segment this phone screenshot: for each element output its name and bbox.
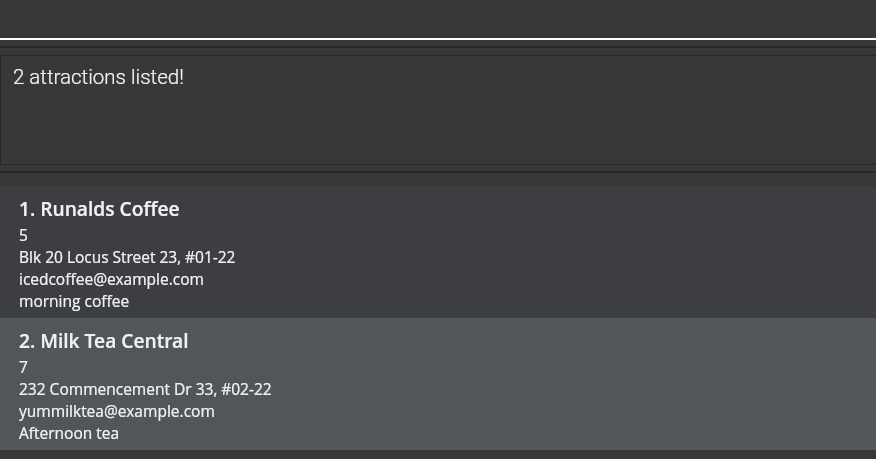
staticText: morning coffee [19,290,130,311]
staticText: Blk 20 Locus Street 23, #01-22 [19,246,236,267]
staticText: 232 Commencement Dr 33, #02-22 [19,378,272,399]
staticText: 1. Runalds Coffee [19,195,180,221]
staticText: yummilktea@example.com [19,400,215,421]
staticText: 2. Milk Tea Central [19,327,189,353]
button[interactable]: 1. Runalds Coffee [0,186,876,318]
staticText: 7 [19,356,28,377]
staticText: icedcoffee@example.com [19,268,205,289]
staticText: Afternoon tea [19,422,120,443]
button[interactable]: Command input [0,0,876,40]
staticText: 2 attractions listed! [13,65,184,89]
staticText: 5 [19,224,28,245]
button[interactable]: 2. Milk Tea Central [0,318,876,450]
